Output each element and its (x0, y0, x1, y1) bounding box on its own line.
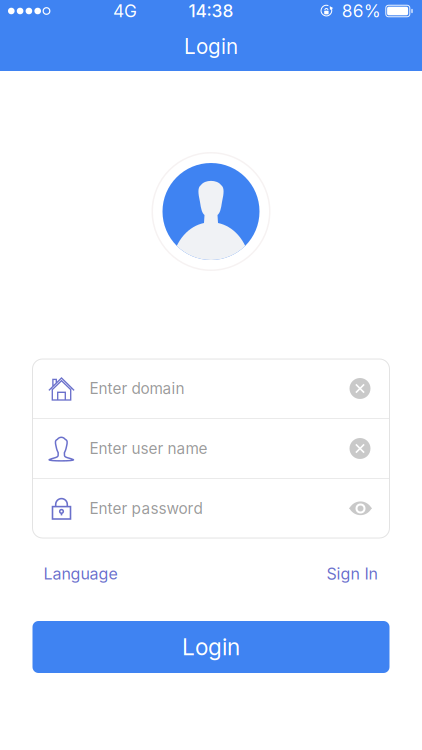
staticText: Login (184, 34, 238, 59)
button[interactable]: Language (32, 556, 128, 591)
staticText: 14:38 (188, 0, 233, 21)
staticText: Enter domain (89, 379, 184, 398)
staticText: Sign In (326, 564, 377, 583)
button[interactable]: Login (32, 621, 389, 673)
button[interactable]: Clear user name (338, 438, 381, 459)
button[interactable]: Sign In (314, 556, 389, 591)
button[interactable]: Show password (339, 500, 381, 517)
staticText: Enter password (89, 499, 202, 518)
staticText: Enter user name (89, 439, 207, 458)
staticText: Login (182, 633, 240, 661)
button[interactable]: Clear domain (338, 378, 381, 399)
staticText: 86% (342, 0, 381, 21)
staticText: Language (43, 564, 117, 583)
staticText: 4G (113, 0, 137, 21)
